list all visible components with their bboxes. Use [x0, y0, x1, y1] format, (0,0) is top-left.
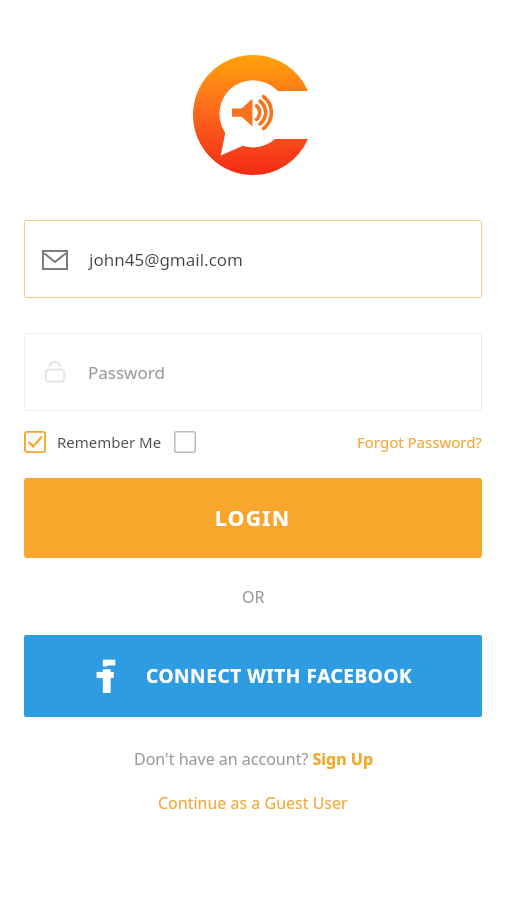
button[interactable]: CONNECT WITH FACEBOOK — [24, 635, 482, 717]
button[interactable]: Toggle option — [174, 431, 196, 453]
button[interactable]: Password — [24, 333, 482, 411]
staticText: OR — [242, 586, 265, 608]
staticText: Remember Me — [57, 432, 162, 452]
staticText: Don't have an account? Sign Up — [134, 748, 373, 770]
button[interactable]: LOGIN — [24, 478, 482, 558]
button[interactable]: Continue as a Guest User — [158, 792, 348, 814]
button[interactable]: Forgot Password? — [357, 432, 482, 452]
staticText: Password — [88, 361, 165, 384]
staticText: Forgot Password? — [357, 432, 482, 452]
staticText: LOGIN — [215, 504, 291, 533]
button[interactable]: Don't have an account? Sign Up — [134, 748, 373, 770]
staticText: Continue as a Guest User — [158, 792, 348, 814]
button[interactable]: Remember Me — [24, 431, 162, 453]
staticText: CONNECT WITH FACEBOOK — [146, 663, 413, 689]
other: App logo — [193, 55, 313, 175]
staticText: john45@gmail.com — [89, 248, 243, 271]
button[interactable]: john45@gmail.com — [24, 220, 482, 298]
